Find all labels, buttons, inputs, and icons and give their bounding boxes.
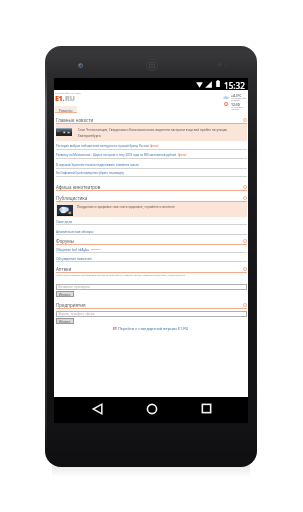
staticText: RU: [65, 93, 75, 103]
button[interactable]: Спят Челюскинцев, Свердлова и Комсомольс…: [56, 124, 247, 141]
button[interactable]: Ресторан выбрал победителей конкурса на …: [56, 141, 247, 150]
button[interactable]: Предприятия: [56, 300, 247, 309]
staticText: осадков: [231, 99, 240, 102]
button[interactable]: Похудение и здоровье: как стать здоровее…: [56, 202, 247, 217]
staticText: 15:32: [224, 80, 245, 91]
staticText: (фото): [149, 144, 159, 148]
button[interactable]: Афиша кинотеатров: [56, 182, 247, 191]
staticText: Четверг: [231, 108, 240, 111]
staticText: Пасмурно, без: [231, 97, 247, 100]
staticText: Разделы: [59, 108, 73, 112]
button[interactable]: Название препарата: [56, 284, 247, 290]
button[interactable]: E1: [113, 326, 189, 331]
staticText: E1.: [55, 93, 65, 103]
button[interactable]: В седьмой Уралочке начали подделывать се…: [56, 160, 247, 169]
staticText: читатели: [90, 248, 101, 251]
button[interactable]: Форумы: [56, 236, 247, 245]
staticText: Публицистика: [56, 195, 88, 201]
staticText: Похудение и здоровье: как стать здоровее…: [77, 205, 245, 209]
button[interactable]: Свое дело: [56, 216, 247, 225]
staticText: 12:30: [231, 102, 240, 107]
staticText: Екатеринбург он-лайн: [55, 91, 81, 94]
staticText: Перейти к стандартной версии E1.RU: [118, 326, 189, 331]
staticText: Форумы: [56, 238, 75, 244]
staticText: Название препарата: [58, 285, 91, 289]
staticText: Фирма, телефон, сфера: [58, 312, 95, 316]
button[interactable]: Развязку на Московской - Щорса построят …: [56, 150, 247, 159]
button[interactable]: Recents: [191, 397, 221, 423]
staticText: Афиша кинотеатров: [56, 184, 101, 190]
button[interactable]: Главные новости: [56, 115, 247, 124]
staticText: В седьмой Уралочке начали подделывать се…: [56, 163, 139, 167]
button[interactable]: Общение ba1nkAybu: [56, 244, 247, 253]
staticText: Искать: [59, 292, 71, 297]
staticText: E1: [113, 326, 117, 331]
button[interactable]: Искать: [56, 291, 74, 297]
button[interactable]: Искать: [56, 318, 74, 324]
staticText: Предприятия: [56, 302, 86, 308]
button[interactable]: Разделы: [55, 106, 77, 113]
staticText: На Софьиной Ерой намерены убрать пешеход…: [56, 171, 125, 175]
staticText: 25 октября,: [231, 106, 244, 109]
button[interactable]: На Софьиной Ерой намерены убрать пешеход…: [56, 168, 247, 177]
staticText: Свое дело: [56, 219, 73, 223]
button[interactable]: Home: [136, 397, 166, 423]
staticText: Поиск лекарственных препаратов в аптеках…: [56, 274, 247, 277]
staticText: Спят Челюскинцев, Свердлова и Комсомольс…: [78, 128, 245, 138]
staticText: Ресторан выбрал победителей конкурса на …: [56, 144, 149, 148]
button[interactable]: Публицистика: [56, 193, 247, 202]
button[interactable]: Back: [81, 397, 111, 423]
button[interactable]: Фирма, телефон, сфера: [56, 311, 247, 317]
staticText: Общение ba1nkAybu: [56, 247, 90, 251]
staticText: (фото): [177, 153, 187, 157]
staticText: Аналитические обзоры: [56, 229, 94, 233]
button[interactable]: Аптеки: [56, 264, 247, 273]
button[interactable]: Аналитические обзоры: [56, 226, 247, 235]
staticText: Главные новости: [56, 117, 94, 123]
staticText: +4.3°C: [231, 93, 242, 98]
staticText: Развязку на Московской - Щорса построят …: [56, 153, 177, 157]
button[interactable]: Обсуждение новостей: [56, 253, 247, 262]
staticText: Обсуждение новостей: [56, 256, 92, 260]
staticText: Искать: [59, 319, 71, 324]
staticText: Аптеки: [56, 266, 72, 272]
